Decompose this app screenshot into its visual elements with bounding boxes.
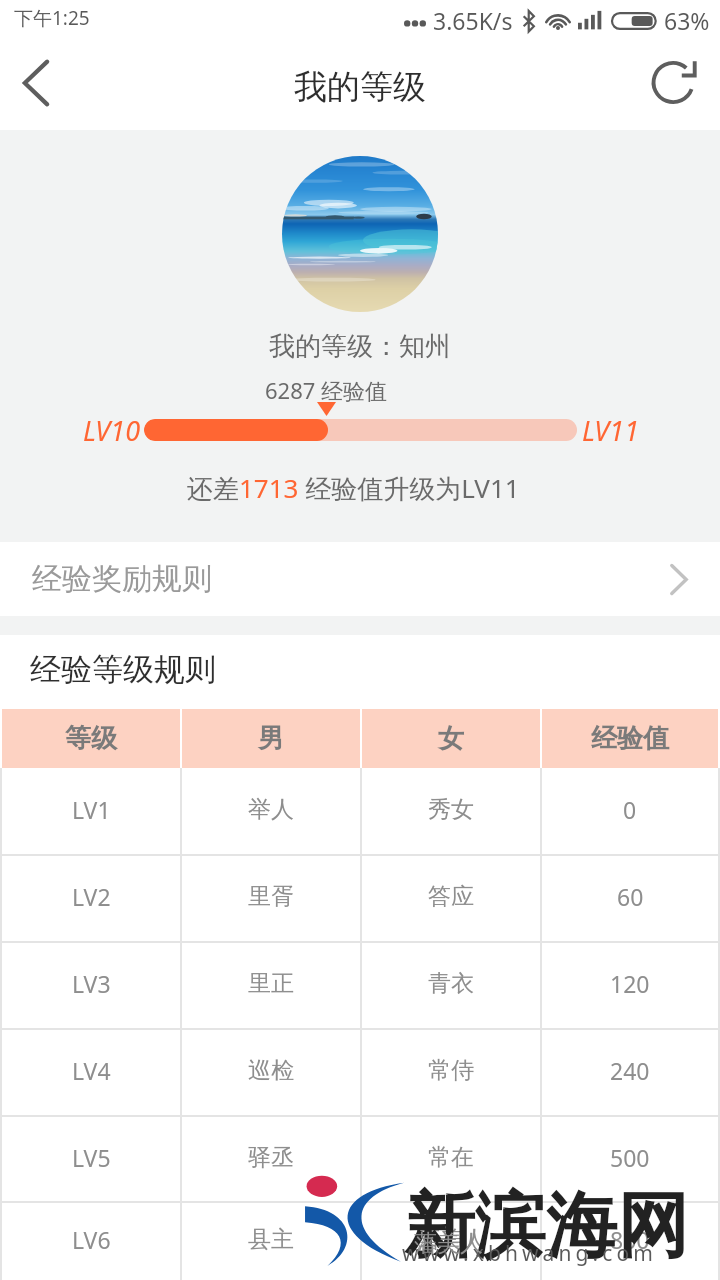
button[interactable]: Refresh (640, 44, 720, 130)
staticText: 秀女 (428, 795, 474, 824)
staticText: LV1 (72, 794, 111, 825)
button[interactable]: 经验奖励规则 (0, 542, 720, 616)
staticText: 举人 (248, 795, 294, 824)
staticText: 常侍 (428, 1056, 474, 1085)
staticText: 经验等级规则 (30, 650, 216, 689)
staticText: 答应 (428, 882, 474, 911)
staticText: 青衣 (428, 969, 474, 998)
button[interactable]: Back (0, 44, 70, 130)
staticText: LV3 (72, 968, 111, 999)
staticText: 驿丞 (248, 1143, 294, 1172)
staticText: 下午1:25 (14, 5, 90, 31)
staticText: 60 (617, 881, 644, 912)
staticText: 经验值 (591, 722, 669, 755)
staticText: 常在 (428, 1143, 474, 1172)
staticText: 120 (610, 968, 650, 999)
staticText: 还差1713 经验值升级为LV11 (187, 470, 520, 506)
staticText: 里胥 (248, 882, 294, 911)
staticText: 800 (610, 1224, 650, 1255)
staticText: 巡检 (248, 1056, 294, 1085)
staticText: LV5 (72, 1142, 111, 1173)
staticText: www.xbhwang.com (402, 1239, 658, 1268)
staticText: 0 (623, 794, 637, 825)
staticText: 藩美人 (414, 1229, 483, 1258)
staticText: LV10 (83, 412, 141, 449)
staticText: 男 (258, 722, 284, 755)
staticText: 里正 (248, 969, 294, 998)
staticText: LV6 (72, 1224, 111, 1255)
staticText: 我的等级：知州 (269, 330, 451, 363)
staticText: 6287 经验值 (265, 375, 388, 405)
staticText: 等级 (65, 722, 117, 755)
staticText: 经验奖励规则 (32, 560, 212, 598)
staticText: 我的等级 (294, 66, 426, 108)
staticText: 240 (610, 1055, 650, 1086)
staticText: 藩美人 (417, 1225, 486, 1254)
staticText: 女 (438, 722, 464, 755)
staticText: LV11 (582, 412, 640, 449)
staticText: LV4 (72, 1055, 111, 1086)
staticText: 63% (664, 5, 710, 36)
staticText: 500 (610, 1142, 650, 1173)
staticText: LV2 (72, 881, 111, 912)
staticText: 新滨海网 (404, 1182, 688, 1271)
staticText: 县主 (248, 1225, 294, 1254)
staticText: 3.65K/s (433, 5, 513, 36)
